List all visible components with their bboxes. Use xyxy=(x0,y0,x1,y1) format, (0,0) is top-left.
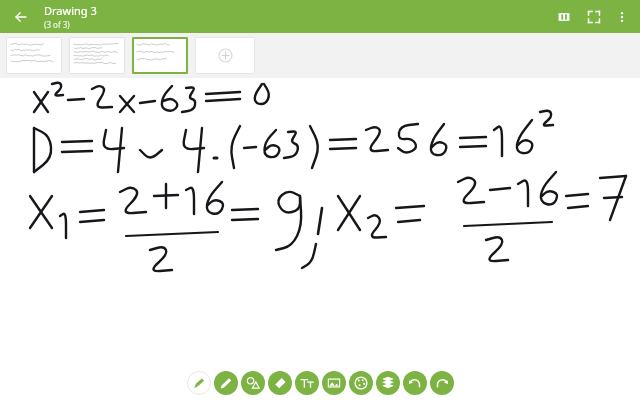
button[interactable]: Page 2 xyxy=(69,37,125,74)
button[interactable]: Insert image xyxy=(322,371,346,395)
button[interactable]: Redo xyxy=(430,371,454,395)
button[interactable]: Page layout xyxy=(552,5,576,29)
button[interactable]: Undo xyxy=(403,371,427,395)
button[interactable]: Layers xyxy=(376,371,400,395)
button[interactable]: Text xyxy=(295,371,319,395)
staticText: (3 of 3) xyxy=(44,19,70,30)
button[interactable]: Add page xyxy=(195,37,255,74)
button[interactable]: Shape fill xyxy=(241,371,265,395)
button[interactable]: Eraser xyxy=(268,371,292,395)
button[interactable]: More options xyxy=(610,5,634,29)
button[interactable]: Brush xyxy=(187,371,211,395)
button[interactable]: Colour palette xyxy=(349,371,373,395)
button[interactable]: Fullscreen xyxy=(582,5,606,29)
button[interactable]: Page 3 xyxy=(132,37,188,74)
button[interactable]: Page 1 xyxy=(6,37,62,74)
button[interactable]: Back xyxy=(7,3,35,31)
button[interactable]: Pen xyxy=(214,371,238,395)
staticText: Drawing 3 xyxy=(44,3,97,18)
